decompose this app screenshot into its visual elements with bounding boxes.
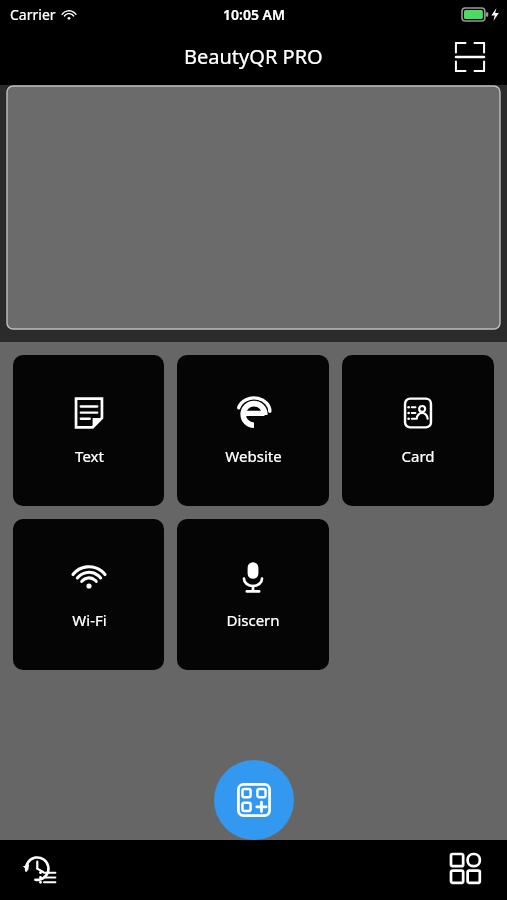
button[interactable]: Wi-Fi [13,519,164,670]
button[interactable]: Text [13,355,164,506]
button[interactable]: Create QR code [214,760,294,840]
staticText: Discern [226,610,280,630]
button[interactable]: Discern [177,519,329,670]
button[interactable]: Scan QR code [448,35,492,79]
staticText: Website [225,446,282,466]
staticText: Wi-Fi [72,610,107,630]
staticText: Card [401,446,435,466]
staticText: Carrier [10,5,56,24]
staticText: BeautyQR PRO [184,43,323,70]
staticText: Text [75,446,104,466]
button[interactable]: Categories [441,844,493,896]
button[interactable]: Website [177,355,329,506]
button[interactable]: History [14,844,66,896]
button[interactable]: Card [342,355,494,506]
staticText: 10:05 AM [223,5,285,24]
